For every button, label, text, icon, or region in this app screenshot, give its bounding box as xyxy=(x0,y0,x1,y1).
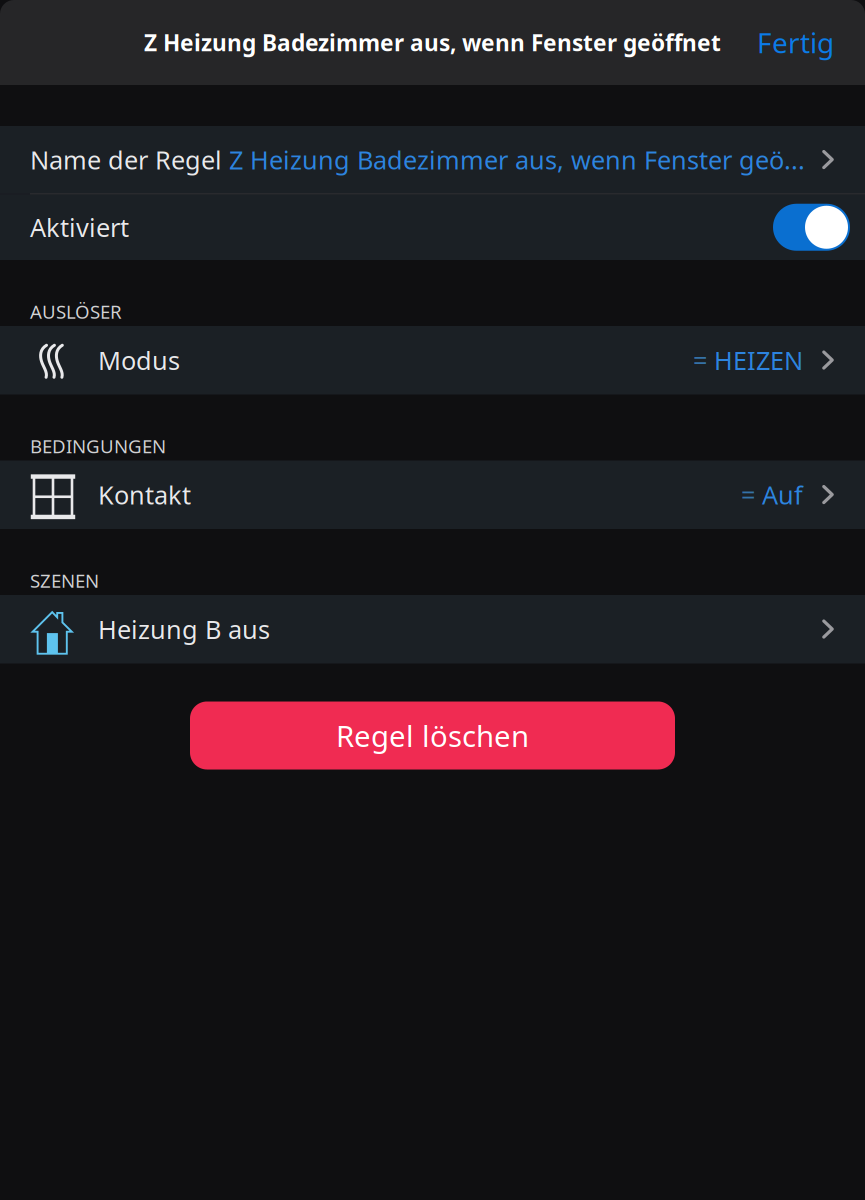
staticText: Auf xyxy=(762,478,803,511)
staticText: Modus xyxy=(98,343,180,377)
staticText: Fertig xyxy=(757,24,834,61)
staticText: Aktiviert xyxy=(30,210,129,244)
button[interactable]: Modus xyxy=(0,326,865,394)
staticText: = xyxy=(693,343,714,377)
button[interactable]: Fertig xyxy=(735,4,865,81)
staticText: AUSLÖSER xyxy=(30,299,122,324)
button[interactable]: Heizung B aus xyxy=(0,595,865,663)
staticText: Regel löschen xyxy=(336,716,529,755)
staticText: HEIZEN xyxy=(714,343,803,377)
button[interactable]: Name der Regel xyxy=(0,126,865,193)
staticText: Z Heizung Badezimmer aus, wenn Fenster g… xyxy=(222,143,805,176)
staticText: = xyxy=(741,478,762,511)
staticText: Kontakt xyxy=(98,478,191,511)
staticText: BEDINGUNGEN xyxy=(30,434,166,458)
button[interactable]: Aktiviert xyxy=(0,194,865,260)
button[interactable]: Kontakt xyxy=(0,460,865,529)
staticText: SZENEN xyxy=(30,568,99,593)
button[interactable]: Regel löschen xyxy=(190,701,675,769)
staticText: Heizung B aus xyxy=(98,612,270,646)
staticText: Name der Regel xyxy=(30,143,222,176)
staticText: Z Heizung Badezimmer aus, wenn Fenster g… xyxy=(144,27,721,57)
